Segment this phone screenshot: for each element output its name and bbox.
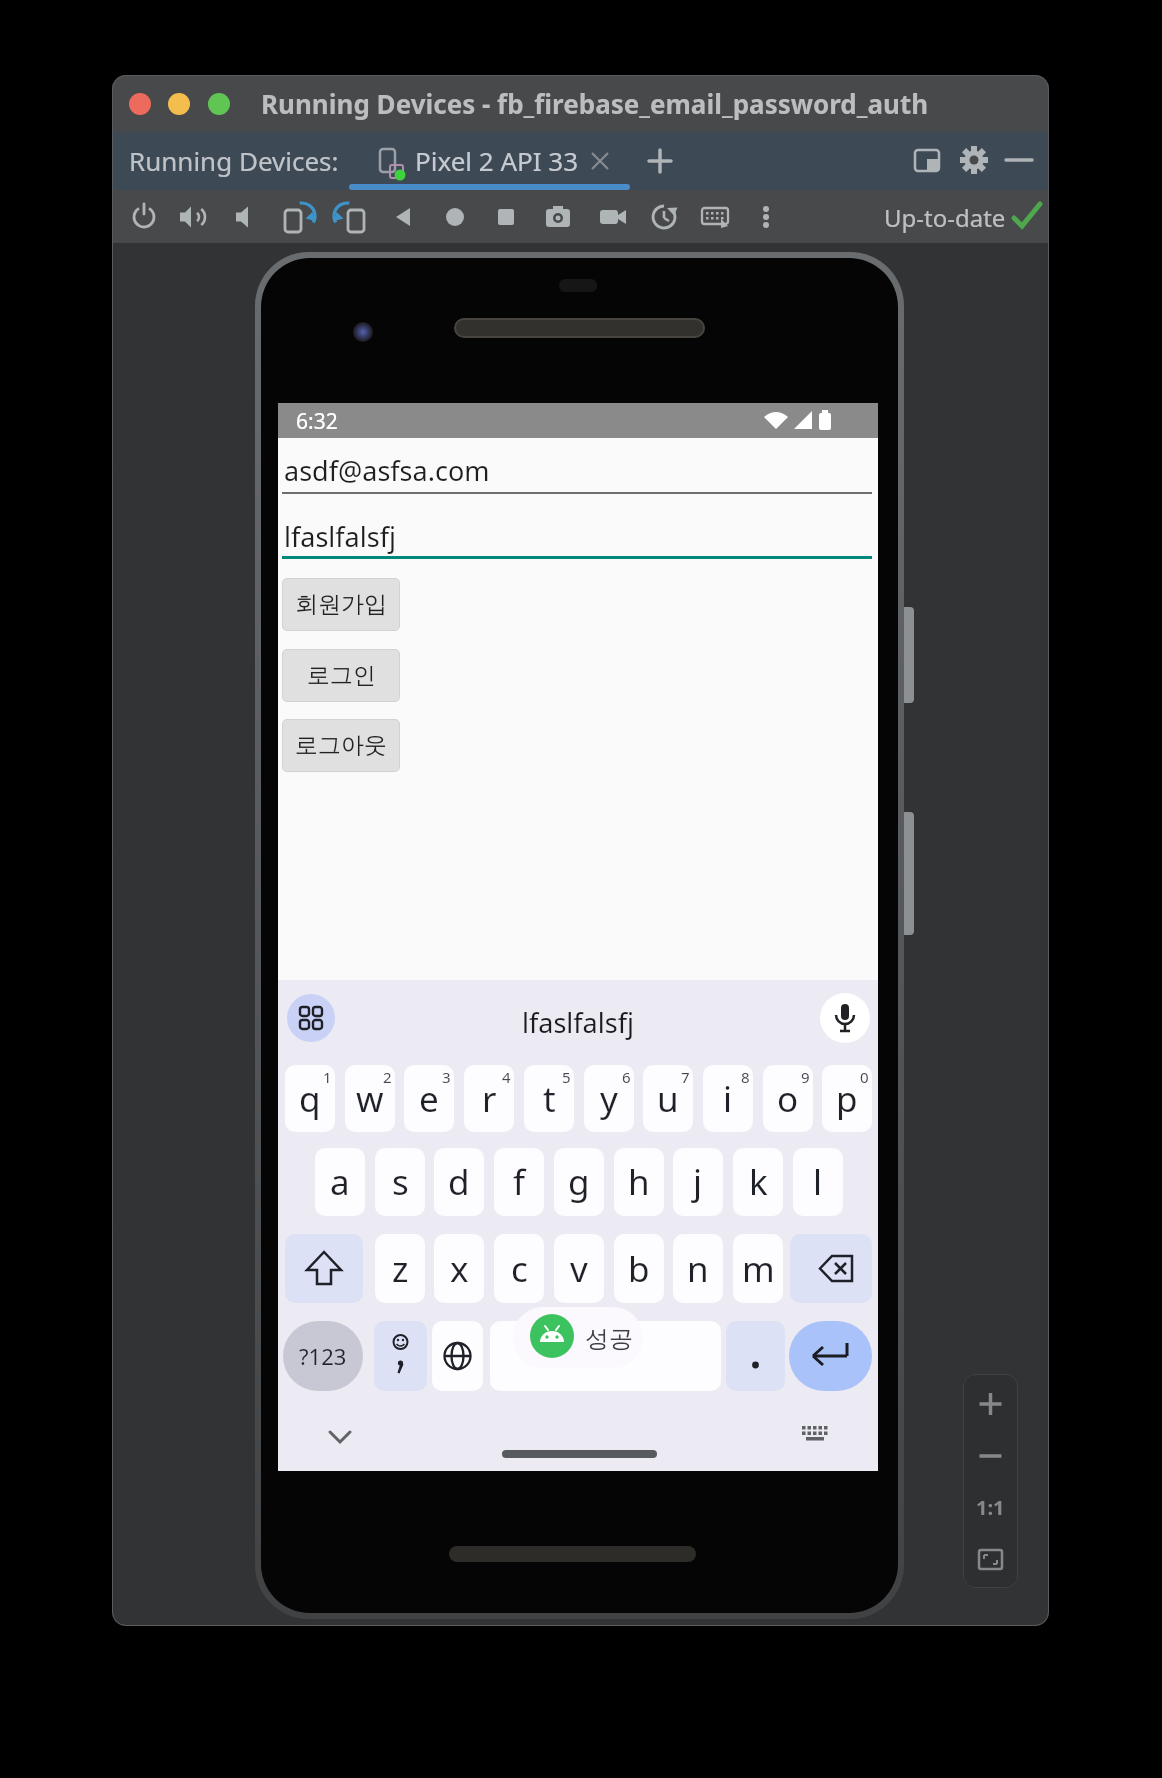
button[interactable]: s bbox=[375, 1148, 425, 1216]
staticText: 회원가입 bbox=[295, 590, 387, 619]
staticText: f bbox=[513, 1158, 526, 1206]
staticText: ?123 bbox=[299, 1341, 347, 1371]
staticText: p bbox=[836, 1075, 858, 1123]
button[interactable]: 회원가입 bbox=[282, 578, 400, 631]
staticText: b bbox=[628, 1245, 650, 1293]
button[interactable]: x bbox=[434, 1234, 484, 1303]
button[interactable]: ?123 bbox=[283, 1321, 363, 1391]
button[interactable]: b bbox=[614, 1234, 664, 1303]
button[interactable]: o bbox=[763, 1065, 813, 1132]
button[interactable]: n bbox=[673, 1234, 723, 1303]
button[interactable] bbox=[129, 93, 151, 115]
staticText: 9 bbox=[801, 1067, 810, 1087]
staticText: Pixel 2 API 33 bbox=[415, 143, 579, 178]
staticText: e bbox=[419, 1075, 439, 1123]
staticText: 1:1 bbox=[976, 1494, 1005, 1521]
button[interactable] bbox=[790, 1234, 872, 1303]
staticText: 1 bbox=[323, 1067, 332, 1087]
staticText: c bbox=[511, 1245, 528, 1293]
button[interactable] bbox=[285, 1234, 363, 1303]
staticText: asdf@asfsa.com bbox=[284, 452, 490, 489]
button[interactable]: r bbox=[464, 1065, 514, 1132]
staticText: a bbox=[330, 1158, 350, 1206]
button[interactable]: 로그아웃 bbox=[282, 719, 400, 772]
staticText: i bbox=[723, 1075, 733, 1123]
button[interactable] bbox=[490, 1321, 721, 1391]
button[interactable]: e bbox=[404, 1065, 454, 1132]
staticText: t bbox=[543, 1075, 556, 1123]
staticText: Running Devices - fb_firebase_email_pass… bbox=[261, 86, 929, 121]
button[interactable]: c bbox=[494, 1234, 544, 1303]
staticText: 4 bbox=[502, 1067, 511, 1087]
button[interactable]: j bbox=[673, 1148, 723, 1216]
staticText: u bbox=[657, 1075, 679, 1123]
staticText: z bbox=[392, 1245, 409, 1293]
staticText: k bbox=[749, 1158, 768, 1206]
staticText: 로그아웃 bbox=[295, 731, 387, 760]
staticText: m bbox=[742, 1245, 775, 1293]
staticText: r bbox=[482, 1075, 497, 1123]
button[interactable]: t bbox=[524, 1065, 574, 1132]
staticText: 성공 bbox=[585, 1324, 633, 1354]
button[interactable]: v bbox=[554, 1234, 604, 1303]
button[interactable]: a bbox=[315, 1148, 365, 1216]
button[interactable]: Pixel 2 API 33 bbox=[349, 132, 630, 190]
button[interactable]: h bbox=[614, 1148, 664, 1216]
staticText: h bbox=[628, 1158, 650, 1206]
staticText: 0 bbox=[860, 1067, 869, 1087]
staticText: Running Devices: bbox=[129, 143, 339, 178]
button[interactable]: g bbox=[554, 1148, 604, 1216]
staticText: q bbox=[299, 1075, 321, 1123]
staticText: g bbox=[568, 1158, 590, 1206]
button[interactable]: u bbox=[643, 1065, 693, 1132]
staticText: d bbox=[448, 1158, 470, 1206]
staticText: 2 bbox=[383, 1067, 392, 1087]
staticText: 6:32 bbox=[296, 407, 338, 436]
button[interactable] bbox=[208, 93, 230, 115]
staticText: Up-to-date bbox=[884, 201, 1006, 234]
button[interactable]: w bbox=[345, 1065, 395, 1132]
staticText: 7 bbox=[681, 1067, 690, 1087]
button[interactable] bbox=[287, 994, 335, 1042]
button[interactable] bbox=[820, 993, 870, 1043]
button[interactable]: f bbox=[494, 1148, 544, 1216]
button[interactable]: y bbox=[584, 1065, 634, 1132]
staticText: l bbox=[813, 1158, 823, 1206]
button[interactable]: l bbox=[793, 1148, 843, 1216]
button[interactable]: m bbox=[733, 1234, 783, 1303]
button[interactable] bbox=[168, 93, 190, 115]
button[interactable]: k bbox=[733, 1148, 783, 1216]
button[interactable] bbox=[789, 1321, 872, 1391]
staticText: y bbox=[600, 1075, 618, 1123]
button[interactable]: q bbox=[285, 1065, 335, 1132]
staticText: x bbox=[450, 1245, 469, 1293]
button[interactable]: 로그인 bbox=[282, 649, 400, 702]
button[interactable] bbox=[432, 1321, 483, 1391]
staticText: o bbox=[777, 1075, 799, 1123]
staticText: v bbox=[570, 1245, 588, 1293]
button[interactable] bbox=[726, 1321, 785, 1391]
staticText: 5 bbox=[562, 1067, 571, 1087]
staticText: lfaslfalsfj bbox=[284, 518, 396, 555]
button[interactable]: z bbox=[375, 1234, 425, 1303]
staticText: 3 bbox=[442, 1067, 451, 1087]
button[interactable]: d bbox=[434, 1148, 484, 1216]
staticText: s bbox=[392, 1158, 409, 1206]
staticText: lfaslfalsfj bbox=[522, 1004, 634, 1041]
staticText: 로그인 bbox=[307, 661, 376, 690]
button[interactable] bbox=[374, 1321, 427, 1391]
staticText: 8 bbox=[741, 1067, 750, 1087]
staticText: j bbox=[693, 1158, 703, 1206]
button[interactable]: i bbox=[703, 1065, 753, 1132]
button[interactable]: p bbox=[822, 1065, 872, 1132]
staticText: w bbox=[356, 1075, 384, 1123]
staticText: n bbox=[687, 1245, 709, 1293]
staticText: 6 bbox=[622, 1067, 631, 1087]
